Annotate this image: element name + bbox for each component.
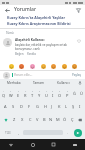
staticText: 3 xyxy=(18,90,20,93)
staticText: 7 xyxy=(46,90,48,93)
staticText: W xyxy=(9,93,13,98)
button[interactable]: L xyxy=(63,100,69,113)
button[interactable]: J xyxy=(49,100,55,113)
staticText: R xyxy=(24,93,27,98)
staticText: K xyxy=(58,104,61,109)
staticText: 6 xyxy=(39,90,41,93)
button[interactable]: M xyxy=(55,113,61,126)
button[interactable]: Filter xyxy=(74,6,82,14)
button[interactable]: Emoji xyxy=(8,63,14,69)
button[interactable]: 2 xyxy=(8,87,14,100)
staticText: Ö xyxy=(63,117,67,122)
button[interactable]: Ö xyxy=(62,113,68,126)
button[interactable]: Shift xyxy=(1,113,10,126)
button[interactable]: 5 xyxy=(29,87,35,100)
staticText: Kuzey Kıbrıs Araştırmasının Bildirisi xyxy=(7,21,71,26)
button[interactable]: C xyxy=(27,113,33,126)
button[interactable]: Keyboard layout xyxy=(64,139,85,150)
button[interactable]: Emoji xyxy=(50,63,56,69)
button[interactable]: 9 xyxy=(57,87,63,100)
button[interactable]: Yorum ekle... xyxy=(12,73,71,77)
staticText: A xyxy=(4,104,7,109)
button[interactable]: Ü xyxy=(78,87,84,100)
staticText: Q xyxy=(2,93,6,98)
staticText: G xyxy=(36,104,39,109)
staticText: F xyxy=(28,104,31,109)
button[interactable]: Emoji xyxy=(18,63,24,69)
staticText: P xyxy=(66,93,69,98)
button[interactable]: 1 xyxy=(1,87,7,100)
button[interactable]: N xyxy=(48,113,54,126)
staticText: Paylaş xyxy=(72,73,81,77)
staticText: 1 xyxy=(3,90,5,93)
button[interactable]: 0 xyxy=(64,87,70,100)
button[interactable]: , xyxy=(15,127,22,138)
staticText: M xyxy=(56,117,60,122)
button[interactable]: Home xyxy=(22,139,43,150)
button[interactable]: Emoji xyxy=(71,63,77,69)
button[interactable]: Send xyxy=(74,129,82,137)
staticText: C xyxy=(29,117,32,122)
button[interactable]: 4 xyxy=(22,87,28,100)
button[interactable]: Emoji xyxy=(29,63,35,69)
button[interactable]: Paylaş xyxy=(71,73,82,77)
staticText: J xyxy=(51,104,53,109)
staticText: Merhaba xyxy=(7,81,21,85)
staticText: 0 xyxy=(67,90,69,93)
staticText: ?123 xyxy=(5,131,11,135)
button[interactable]: Tamam xyxy=(26,79,51,87)
staticText: Yanıtla xyxy=(27,52,36,56)
staticText: X xyxy=(21,117,24,122)
button[interactable]: Kullanıcı xyxy=(51,79,76,87)
button[interactable]: 3 xyxy=(15,87,21,100)
button[interactable]: 8 xyxy=(50,87,56,100)
button[interactable]: K xyxy=(56,100,62,113)
button[interactable]: Z xyxy=(11,113,18,126)
button[interactable]: Backspace xyxy=(76,113,84,126)
staticText: , xyxy=(18,131,19,135)
staticText: O xyxy=(58,93,62,98)
staticText: H xyxy=(44,104,47,109)
button[interactable]: V xyxy=(34,113,40,126)
staticText: L xyxy=(65,104,68,109)
button[interactable]: X xyxy=(19,113,26,126)
staticText: 5 xyxy=(32,90,34,93)
button[interactable]: Like xyxy=(76,38,82,44)
button[interactable]: Ç xyxy=(69,113,75,126)
button[interactable]: D xyxy=(18,100,25,113)
staticText: . xyxy=(67,131,68,135)
button[interactable]: I xyxy=(77,100,83,113)
button[interactable]: ?123 xyxy=(1,127,14,138)
staticText: Ğ xyxy=(73,91,76,96)
staticText: 2 xyxy=(10,90,12,93)
staticText: T xyxy=(31,93,34,98)
button[interactable]: F xyxy=(26,100,33,113)
button[interactable]: Alaşehirli Kullanıcı xyxy=(0,37,85,57)
button[interactable]: G xyxy=(34,100,41,113)
button[interactable]: 7 xyxy=(43,87,49,100)
button[interactable]: Kuzey Kıbrıs'ta Alaşehirli Yaşlılar xyxy=(0,14,85,27)
button[interactable]: Back xyxy=(3,6,11,14)
staticText: Ç xyxy=(71,117,74,122)
button[interactable]: Emoji xyxy=(40,63,46,69)
button[interactable]: Merhaba xyxy=(2,79,26,87)
button[interactable]: Ğ xyxy=(71,87,77,100)
staticText: Tümü xyxy=(6,31,14,35)
button[interactable]: Voice input xyxy=(76,79,83,87)
button[interactable]: Ş xyxy=(70,100,76,113)
staticText: Yorum ekle... xyxy=(14,73,33,77)
button[interactable]: H xyxy=(42,100,48,113)
button[interactable]: Recents xyxy=(43,139,64,150)
staticText: konuşmasız. canlı xyxy=(15,47,40,51)
button[interactable]: Emoji xyxy=(61,63,67,69)
button[interactable]: 6 xyxy=(36,87,42,100)
staticText: Ş xyxy=(72,104,75,109)
staticText: Kullanıcı xyxy=(57,81,70,85)
staticText: U xyxy=(45,93,48,98)
button[interactable]: A xyxy=(2,100,9,113)
button[interactable]: Hide keyboard xyxy=(0,139,22,150)
button[interactable]: B xyxy=(41,113,47,126)
button[interactable]: S xyxy=(10,100,17,113)
